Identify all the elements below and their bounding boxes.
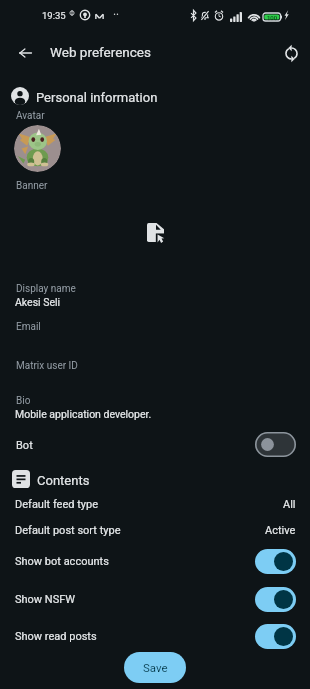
staticText: Matrix user ID — [16, 360, 78, 372]
staticText: Show read posts — [15, 630, 97, 643]
button[interactable]: Save — [124, 652, 186, 683]
staticText: Bot — [16, 439, 33, 452]
button[interactable]: Personal information — [0, 83, 310, 109]
staticText: Save — [143, 661, 168, 674]
button[interactable]: Show bot accounts — [0, 543, 310, 580]
staticText: Bio — [16, 395, 31, 407]
button[interactable] — [0, 426, 310, 463]
staticText: Default feed type — [15, 498, 99, 511]
staticText: Show bot accounts — [15, 555, 109, 568]
staticText: All — [283, 498, 296, 511]
button[interactable]: Change avatar — [14, 125, 61, 172]
staticText: Active — [265, 524, 296, 537]
button[interactable]: Show read posts — [0, 618, 310, 655]
button[interactable]: Default feed type — [0, 491, 310, 517]
staticText: 19:35 — [42, 10, 66, 21]
button[interactable]: Contents — [0, 466, 310, 492]
staticText: Web preferences — [50, 44, 151, 60]
staticText: Display name — [16, 283, 76, 295]
button[interactable]: Default post sort type — [0, 517, 310, 543]
staticText: Show NSFW — [15, 593, 76, 606]
staticText: Email — [16, 321, 41, 333]
staticText: Mobile application developer. — [15, 408, 152, 420]
button[interactable]: Sync — [273, 35, 309, 71]
button[interactable]: Show NSFW — [0, 581, 310, 618]
staticText: Personal information — [36, 90, 158, 105]
staticText: Contents — [37, 473, 90, 488]
staticText: Banner — [16, 180, 48, 192]
staticText: Akesi Seli — [15, 296, 61, 308]
staticText: 100 — [267, 14, 278, 21]
button[interactable]: Change banner — [0, 196, 310, 268]
staticText: Default post sort type — [15, 524, 121, 537]
staticText: Avatar — [16, 110, 45, 122]
button[interactable]: Back — [7, 35, 43, 71]
